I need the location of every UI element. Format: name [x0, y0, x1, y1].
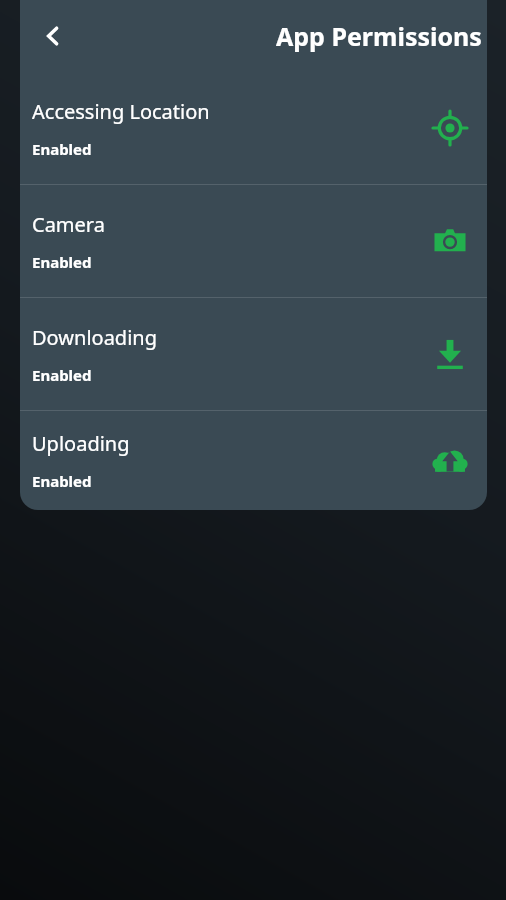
staticText: Enabled	[32, 139, 92, 159]
staticText: Uploading	[32, 430, 130, 457]
button[interactable]: Downloading	[20, 298, 487, 410]
button[interactable]: Camera	[20, 185, 487, 297]
staticText: Camera	[32, 211, 105, 238]
staticText: App Permissions	[276, 19, 482, 53]
staticText: Downloading	[32, 324, 157, 351]
button[interactable]: Uploading	[20, 411, 487, 510]
staticText: Enabled	[32, 252, 92, 272]
staticText: Enabled	[32, 365, 92, 385]
button[interactable]: Back	[26, 9, 80, 63]
staticText: Accessing Location	[32, 98, 210, 125]
staticText: Enabled	[32, 471, 92, 491]
button[interactable]: Accessing Location	[20, 72, 487, 184]
